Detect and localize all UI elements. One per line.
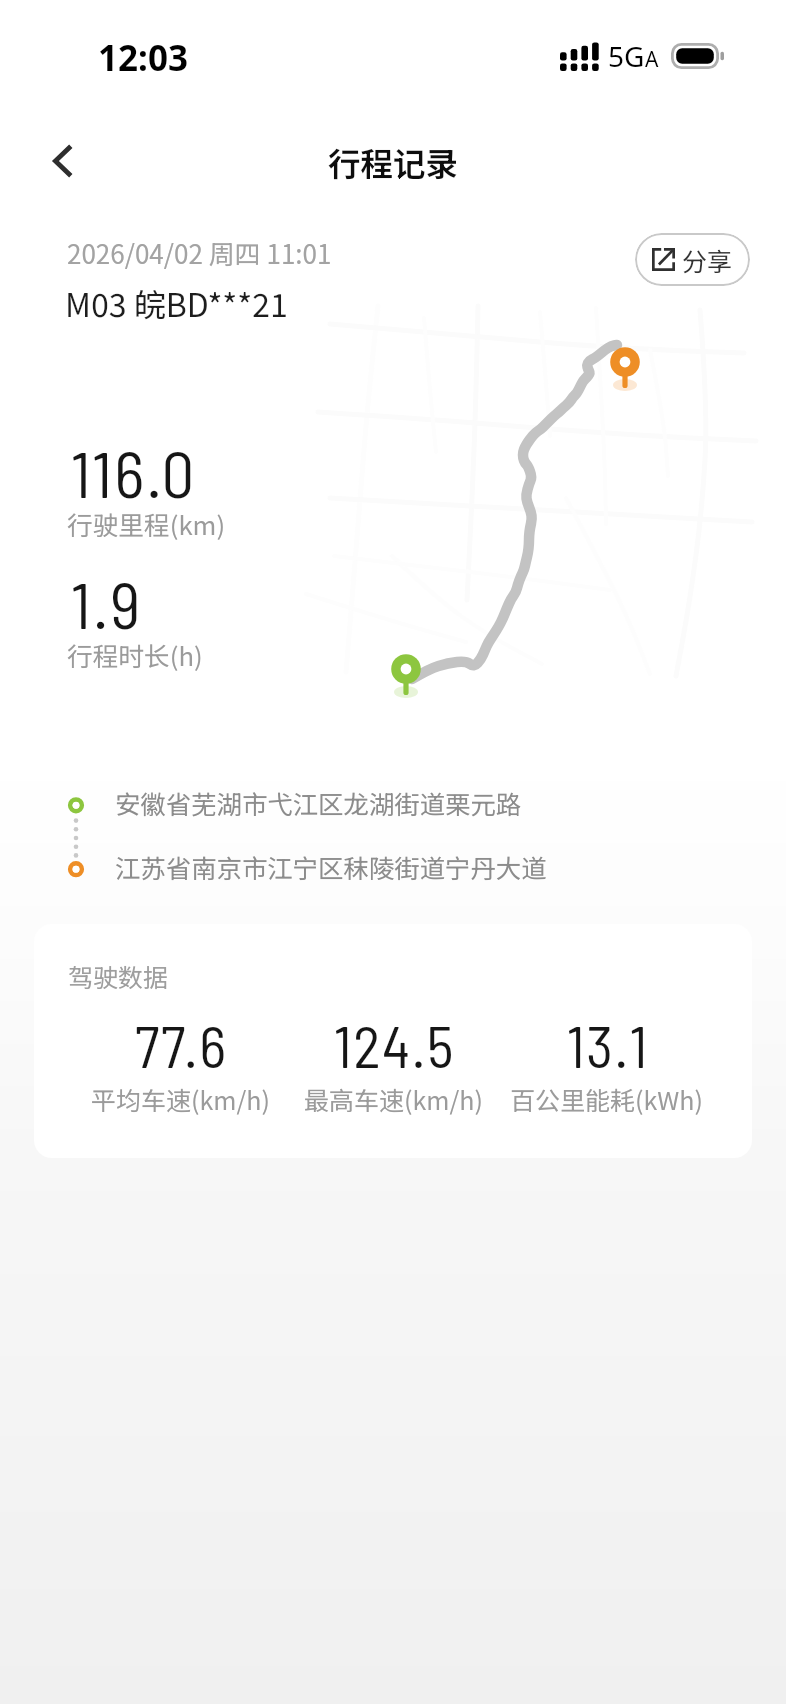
button[interactable]: Back xyxy=(31,129,95,193)
staticText: 1.9 xyxy=(71,564,143,642)
button[interactable]: 分享 Share xyxy=(635,233,750,286)
staticText: 行驶里程(km) xyxy=(67,505,226,542)
staticText: 77.6 xyxy=(135,1010,228,1080)
staticText: 2026/04/02 周四 11:01 xyxy=(67,234,332,272)
staticText: 12:03 xyxy=(98,34,188,82)
staticText: 13.1 xyxy=(567,1010,649,1080)
staticText: 分享 xyxy=(682,242,733,278)
staticText: A xyxy=(645,45,659,74)
staticText: 百公里能耗(kWh) xyxy=(510,1081,703,1117)
staticText: 安徽省芜湖市弋江区龙湖街道栗元路 xyxy=(115,785,522,822)
staticText: 驾驶数据 xyxy=(68,958,169,994)
staticText: 5G xyxy=(608,37,645,75)
staticText: 最高车速(km/h) xyxy=(304,1081,483,1117)
staticText: M03 皖BD***21 xyxy=(65,280,288,326)
staticText: 行程记录 xyxy=(328,138,459,185)
staticText: 江苏省南京市江宁区秣陵街道宁丹大道 xyxy=(115,849,547,886)
staticText: 124.5 xyxy=(334,1010,456,1080)
staticText: 行程时长(h) xyxy=(67,636,203,673)
staticText: 116.0 xyxy=(71,433,197,511)
button[interactable]: 驾驶数据 xyxy=(34,924,752,1158)
staticText: 平均车速(km/h) xyxy=(91,1081,270,1117)
